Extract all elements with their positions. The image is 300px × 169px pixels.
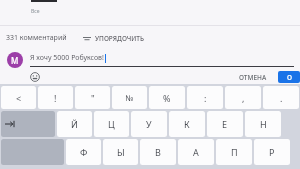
staticText: А	[193, 146, 199, 158]
button[interactable]: П	[216, 139, 252, 165]
staticText: В	[155, 146, 161, 158]
staticText: 331 комментарий	[6, 33, 67, 43]
button[interactable]: Ф	[66, 139, 101, 165]
staticText: УПОРЯДОЧИТЬ	[95, 34, 144, 43]
button[interactable]: Й	[57, 111, 92, 137]
button[interactable]: К	[169, 111, 205, 137]
button[interactable]: Tab	[1, 111, 55, 137]
button[interactable]: Эмодзи	[29, 71, 41, 83]
button[interactable]: %	[149, 86, 185, 109]
staticText: Е	[222, 118, 228, 130]
staticText: %	[163, 92, 171, 104]
button[interactable]: У	[131, 111, 167, 137]
button[interactable]: .	[263, 86, 299, 109]
staticText: .	[280, 92, 283, 104]
staticText: ОТМЕНА	[239, 73, 267, 82]
staticText: "	[91, 92, 95, 104]
button[interactable]: !	[38, 86, 73, 109]
staticText: Й	[71, 118, 78, 130]
button[interactable]: Отправить	[278, 71, 300, 83]
staticText: П	[231, 146, 238, 158]
staticText: <	[16, 92, 22, 104]
button[interactable]: "	[75, 86, 110, 109]
button[interactable]: Я хочу 5000 Робуксов!	[30, 53, 294, 67]
staticText: №	[125, 92, 134, 103]
staticText: У	[146, 118, 152, 130]
staticText: К	[184, 118, 190, 130]
staticText: :	[204, 92, 207, 104]
staticText: О	[287, 73, 292, 82]
button[interactable]: Ц	[94, 111, 129, 137]
button[interactable]: <	[1, 86, 36, 109]
staticText: M	[11, 55, 19, 66]
button[interactable]: В	[140, 139, 176, 165]
button[interactable]: Ы	[103, 139, 138, 165]
button[interactable]: УПОРЯДОЧИТЬ	[81, 32, 146, 45]
button[interactable]: Р	[254, 139, 290, 165]
staticText: !	[54, 92, 57, 104]
staticText: ,	[242, 92, 245, 104]
button[interactable]: :	[187, 86, 223, 109]
button[interactable]: №	[112, 86, 147, 109]
button[interactable]: А	[178, 139, 214, 165]
button[interactable]: ,	[225, 86, 261, 109]
staticText: Я хочу 5000 Робуксов!	[30, 53, 104, 63]
button[interactable]: Профиль	[7, 52, 23, 68]
button[interactable]: Н	[245, 111, 281, 137]
staticText: Р	[269, 146, 275, 158]
staticText: Ы	[117, 146, 125, 158]
button[interactable]: ОТМЕНА	[233, 71, 273, 84]
staticText: Ц	[108, 118, 115, 130]
staticText: Н	[260, 118, 267, 130]
staticText: Все	[31, 8, 40, 15]
button[interactable]: Е	[207, 111, 243, 137]
staticText: Ф	[80, 146, 88, 158]
